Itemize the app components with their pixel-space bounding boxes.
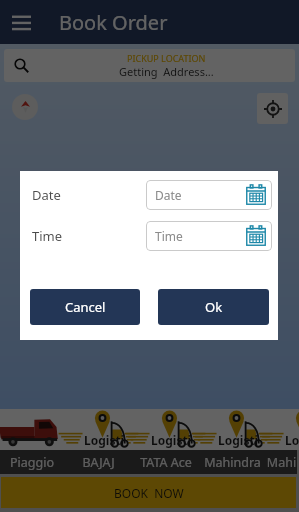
staticText: Logisti (84, 432, 125, 448)
button[interactable]: Menu (0, 0, 42, 44)
staticText: Logisti (285, 432, 299, 448)
button[interactable]: BAJAJ (65, 450, 132, 474)
staticText: Logisti (218, 432, 259, 448)
staticText: Getting Address... (119, 64, 214, 79)
staticText: Mahindra (204, 454, 261, 471)
button[interactable]: Date (146, 180, 272, 210)
button[interactable]: BOOK NOW (1, 477, 296, 508)
button[interactable]: Piaggio (0, 450, 65, 474)
staticText: Logisti (151, 432, 192, 448)
button[interactable]: Time (146, 221, 272, 251)
staticText: Date (155, 187, 182, 203)
button[interactable]: TATA Ace (132, 450, 199, 474)
staticText: Time (32, 227, 63, 245)
staticText: BAJAJ (82, 454, 115, 471)
staticText: Ok (205, 298, 223, 316)
button[interactable]: Mahindra (199, 450, 266, 474)
staticText: BOOK NOW (114, 485, 184, 501)
button[interactable]: My location (257, 93, 288, 124)
button[interactable]: PICKUP LOCATION (4, 49, 295, 82)
button[interactable]: Cancel (30, 289, 140, 325)
staticText: Cancel (65, 298, 106, 316)
staticText: Mahindra (266, 454, 297, 471)
staticText: PICKUP LOCATION (127, 52, 206, 64)
staticText: TATA Ace (140, 454, 192, 471)
staticText: Date (32, 186, 61, 204)
staticText: Piaggio (10, 454, 54, 471)
staticText: Time (155, 228, 183, 244)
button[interactable]: Compass (12, 94, 38, 120)
button[interactable]: Mahindra (266, 450, 297, 474)
staticText: Book Order (59, 9, 168, 36)
button[interactable]: Ok (158, 289, 269, 325)
